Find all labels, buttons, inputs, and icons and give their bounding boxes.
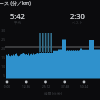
staticText: 5 [0, 74, 5, 78]
staticText: 5:42 [10, 11, 25, 21]
staticText: 25 [0, 38, 5, 42]
button[interactable]: 5:42 [6, 11, 28, 25]
staticText: ース (分／km) [0, 0, 31, 7]
staticText: 時間 (分:秒) [41, 91, 65, 96]
staticText: 50:24 [77, 85, 91, 89]
staticText: 20 [0, 47, 5, 51]
staticText: 12:36 [19, 85, 33, 89]
staticText: 2:30 [70, 11, 85, 21]
staticText: 10 [0, 65, 5, 69]
staticText: 30 [0, 29, 5, 33]
button[interactable]: 2:30 [66, 11, 88, 25]
staticText: 15 [0, 56, 5, 60]
staticText: 0:00 [0, 85, 14, 89]
staticText: ベスト [72, 21, 83, 25]
staticText: 37:48 [58, 85, 72, 89]
staticText: 25:12 [39, 85, 53, 89]
staticText: 平均 [14, 21, 21, 25]
